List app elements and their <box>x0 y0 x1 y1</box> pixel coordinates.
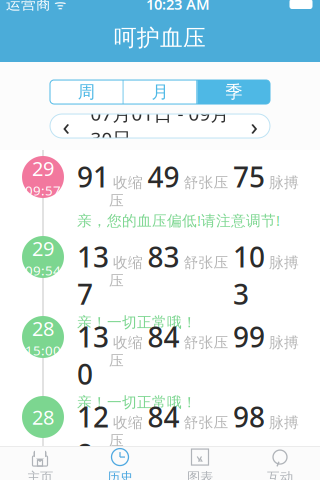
staticText: 75 <box>233 158 265 195</box>
button[interactable]: 月 <box>124 80 196 104</box>
button[interactable]: 互动 <box>240 447 320 480</box>
staticText: 98 <box>233 398 265 435</box>
staticText: › <box>250 110 257 142</box>
button[interactable]: 29 <box>0 230 320 310</box>
button[interactable]: 上一季度 <box>50 114 82 138</box>
staticText: 互动 <box>267 469 293 480</box>
staticText: 29 <box>32 155 54 181</box>
staticText: 07月01日 - 09月30日 <box>90 101 229 151</box>
staticText: 收缩压 <box>109 174 143 210</box>
staticText: 15:00 <box>25 341 61 359</box>
staticText: 亲，您的血压偏低!请注意调节! <box>77 211 280 230</box>
staticText: 09:57 <box>25 181 61 199</box>
staticText: 99 <box>233 318 265 355</box>
button[interactable]: 下一季度 <box>238 114 270 138</box>
staticText: 28 <box>32 315 54 341</box>
staticText: 收缩压 <box>109 414 143 450</box>
staticText: 舒张压 <box>179 254 228 272</box>
staticText: 91 <box>77 158 109 195</box>
button[interactable]: 图表 <box>160 447 240 480</box>
staticText: 脉搏 <box>265 174 299 192</box>
staticText: 图表 <box>187 469 213 480</box>
button[interactable]: 29 <box>0 150 320 230</box>
staticText: 脉搏 <box>265 414 299 432</box>
button[interactable]: 28 <box>0 310 320 390</box>
staticText: 28 <box>32 404 54 430</box>
button[interactable]: 周 <box>50 80 123 104</box>
staticText: 亲！一切正常哦！ <box>77 393 197 411</box>
staticText: 09:54 <box>25 261 61 279</box>
staticText: 季 <box>225 81 242 103</box>
staticText: ‹ <box>62 110 69 142</box>
staticText: 运营商 <box>6 0 51 13</box>
staticText: 10:23 AM <box>146 0 210 14</box>
staticText: 137 <box>77 238 109 312</box>
staticText: 亲！一切正常哦！ <box>77 313 197 331</box>
button[interactable]: 历史 <box>80 447 160 480</box>
staticText: 收缩压 <box>109 334 143 370</box>
staticText: 49 <box>147 158 179 195</box>
staticText: 周 <box>78 81 95 103</box>
staticText: 历史 <box>107 469 133 480</box>
staticText: 舒张压 <box>179 334 228 352</box>
staticText: 128 <box>77 398 109 472</box>
staticText: ᯤ <box>51 0 66 13</box>
staticText: 84 <box>147 398 179 435</box>
staticText: 130 <box>77 318 109 392</box>
staticText: 脉搏 <box>265 334 299 352</box>
button[interactable]: 28 <box>0 390 320 470</box>
staticText: 月 <box>151 81 168 103</box>
staticText: 收缩压 <box>109 254 143 290</box>
staticText: 84 <box>147 318 179 355</box>
button[interactable]: 季 <box>197 80 270 104</box>
button[interactable]: 主页 <box>0 447 80 480</box>
staticText: 83 <box>147 238 179 275</box>
staticText: 103 <box>233 238 265 312</box>
staticText: 舒张压 <box>179 414 228 432</box>
staticText: 29 <box>32 235 54 261</box>
staticText: 主页 <box>27 469 53 480</box>
staticText: 脉搏 <box>265 254 299 272</box>
staticText: 呵护血压 <box>114 24 206 52</box>
staticText: 舒张压 <box>179 174 228 192</box>
